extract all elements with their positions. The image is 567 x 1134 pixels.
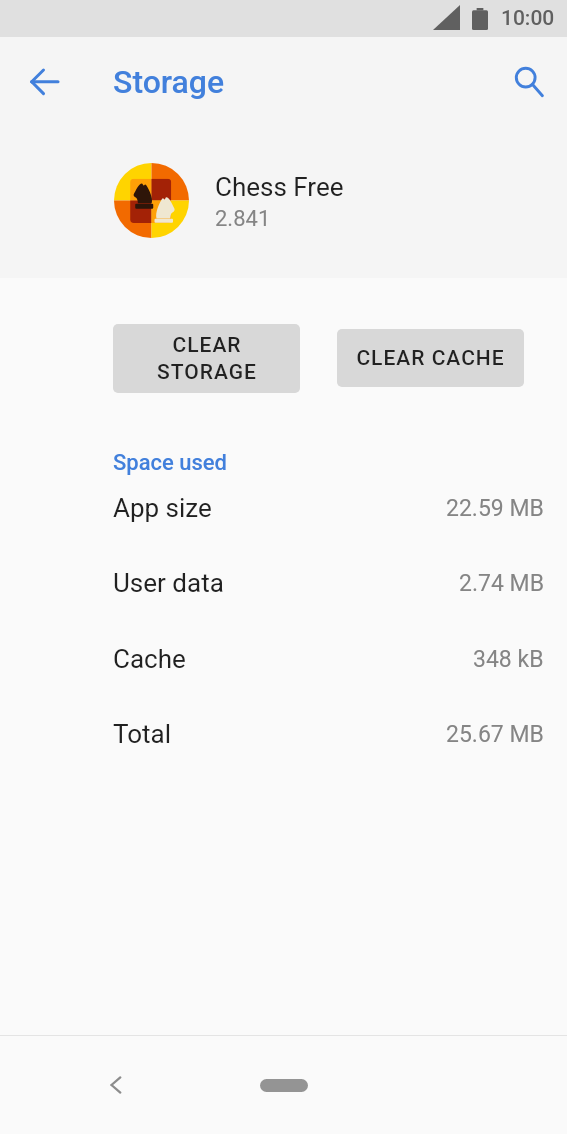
staticText: App size (113, 493, 212, 523)
staticText: 25.67 MB (446, 721, 544, 748)
button[interactable]: Navigate up (16, 54, 72, 110)
button[interactable]: CLEAR CACHE (337, 329, 524, 387)
button[interactable]: CLEAR STORAGE (113, 324, 300, 393)
button[interactable]: User data (0, 545, 567, 621)
staticText: User data (113, 568, 224, 598)
button[interactable]: Back (92, 1061, 140, 1109)
button[interactable]: Search (498, 50, 554, 106)
button[interactable]: App size (0, 470, 567, 546)
staticText: Total (113, 719, 172, 749)
staticText: 10:00 (501, 6, 555, 31)
staticText: Cache (113, 644, 186, 674)
button[interactable]: Home (260, 1079, 308, 1092)
button[interactable]: Cache (0, 621, 567, 697)
staticText: Storage (113, 63, 225, 101)
staticText: 348 kB (473, 646, 544, 673)
staticText: CLEAR STORAGE (157, 333, 257, 385)
staticText: Chess Free (215, 172, 344, 202)
button[interactable]: Total (0, 696, 567, 772)
staticText: 2.74 MB (459, 570, 544, 597)
staticText: 2.841 (215, 206, 271, 232)
staticText: CLEAR CACHE (356, 346, 505, 371)
staticText: Space used (113, 450, 228, 476)
staticText: 22.59 MB (446, 495, 544, 522)
